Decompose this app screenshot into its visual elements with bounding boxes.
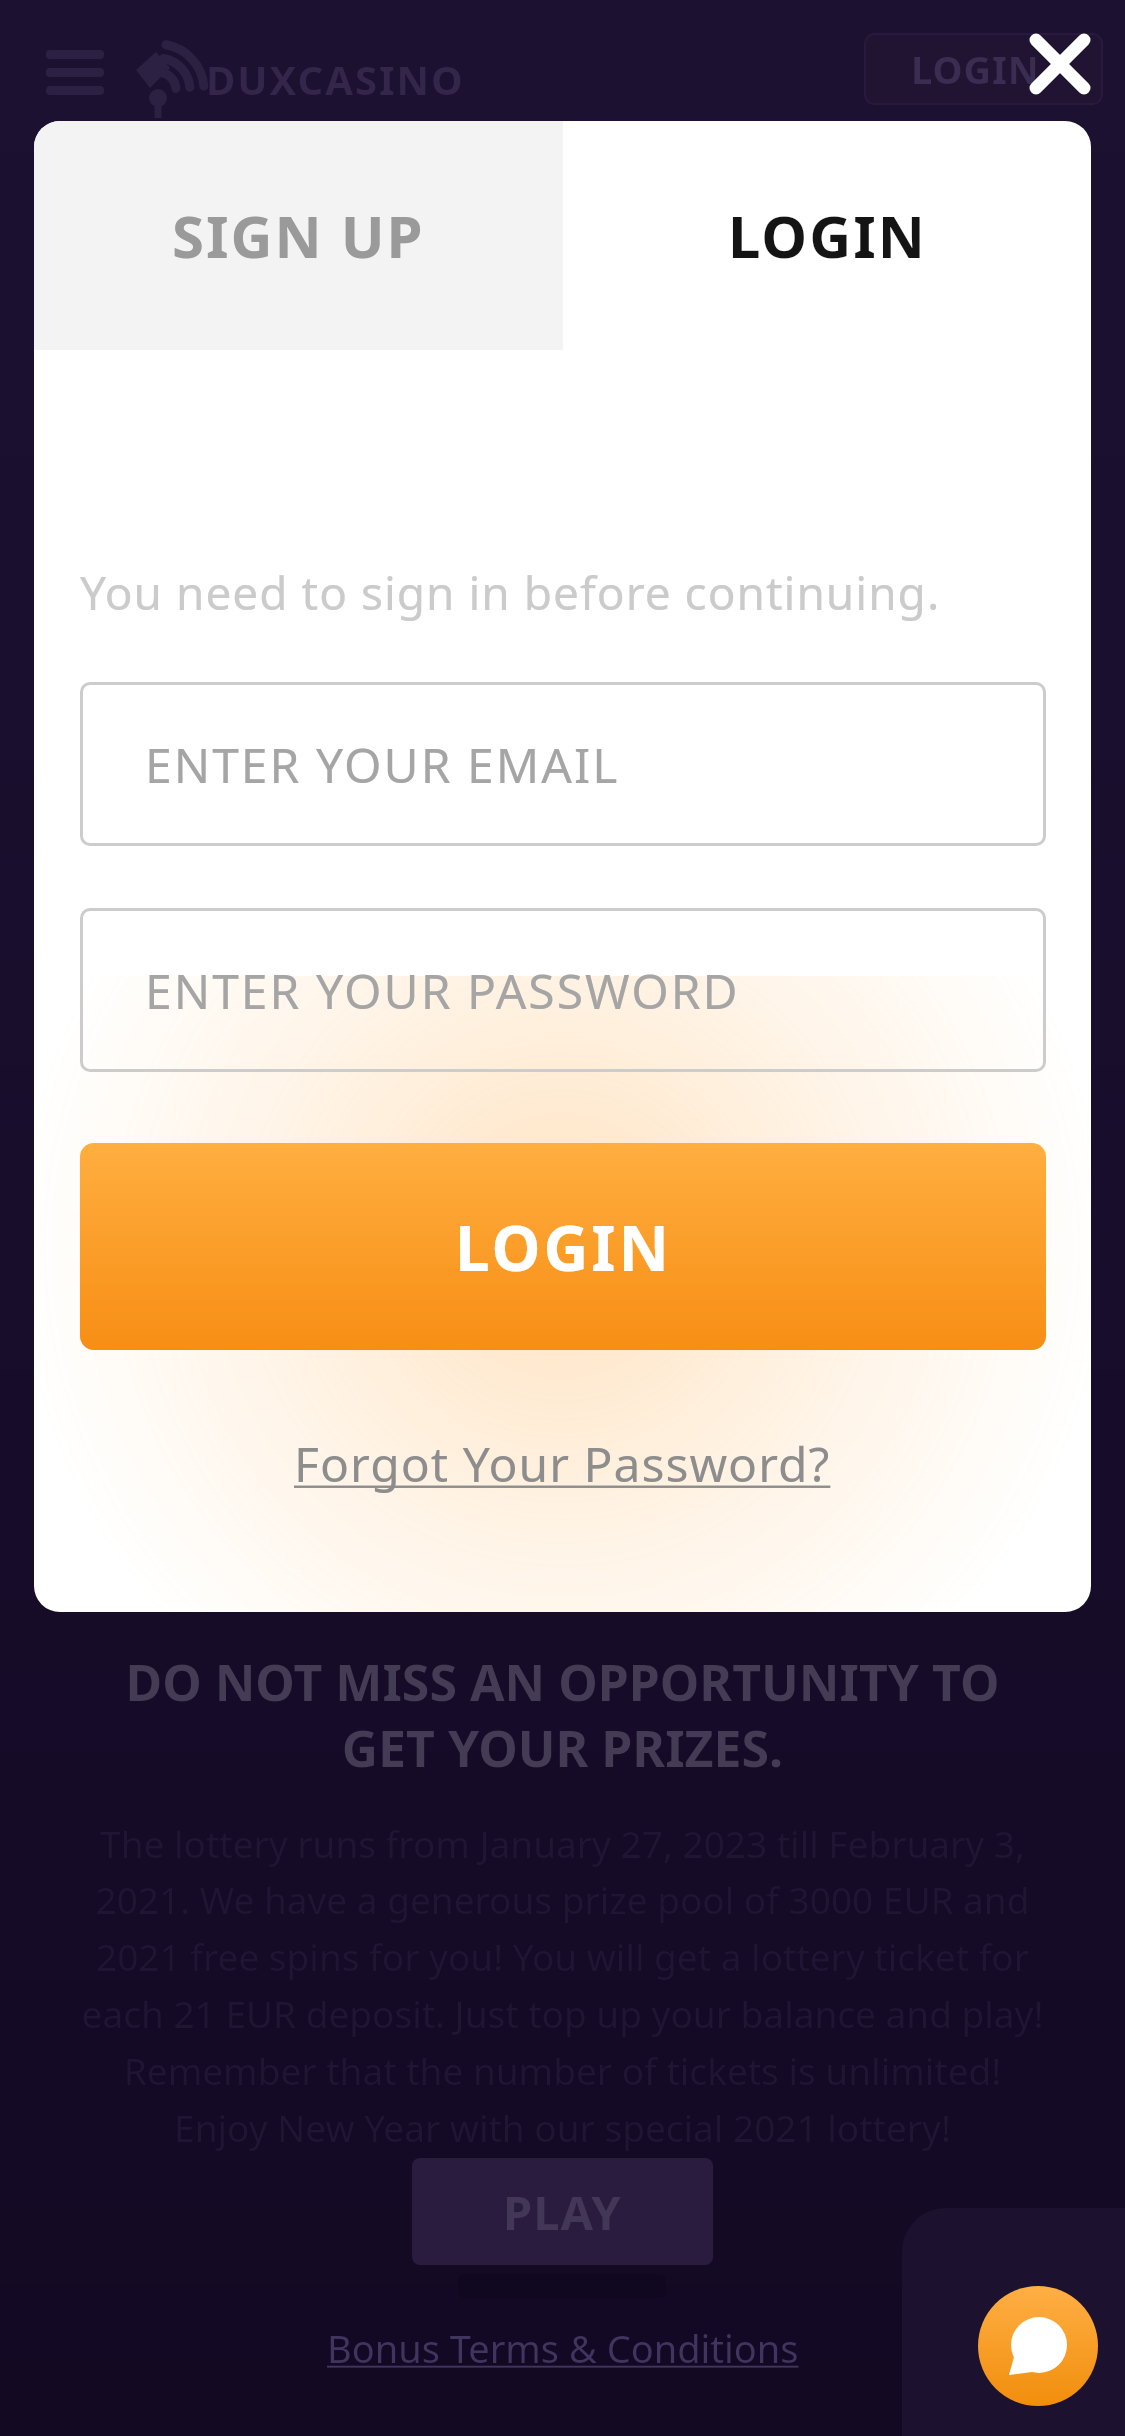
button[interactable]	[978, 2286, 1098, 2406]
button[interactable]: LOGIN	[864, 33, 1103, 105]
staticText: PLAY	[503, 2180, 622, 2244]
staticText: LOGIN	[455, 1205, 672, 1289]
staticText: LOGIN	[911, 43, 1040, 95]
staticText: DUXCASINO	[206, 52, 465, 106]
button[interactable]: LOGIN	[80, 1143, 1046, 1350]
button[interactable]	[1030, 34, 1090, 94]
staticText: GET YOUR PRIZES.	[0, 1714, 1125, 1782]
button[interactable]: SIGN UP	[34, 121, 563, 350]
button[interactable]: Bonus Terms & Conditions	[327, 2322, 799, 2374]
staticText: The lottery runs from January 27, 2023 t…	[0, 1818, 1125, 2153]
button[interactable]	[46, 50, 104, 96]
staticText: ENTER YOUR EMAIL	[145, 732, 620, 797]
button[interactable]: ENTER YOUR PASSWORD	[80, 908, 1046, 1072]
staticText: ENTER YOUR PASSWORD	[145, 958, 740, 1023]
staticText: You need to sign in before continuing.	[80, 561, 941, 624]
button[interactable]: PLAY	[412, 2158, 713, 2265]
staticText: DO NOT MISS AN OPPORTUNITY TO	[0, 1648, 1125, 1716]
staticText: LOGIN	[728, 196, 927, 275]
button[interactable]: ENTER YOUR EMAIL	[80, 682, 1046, 846]
button[interactable]: Forgot Your Password?	[294, 1431, 831, 1496]
staticText: SIGN UP	[172, 196, 425, 275]
button[interactable]: LOGIN	[563, 121, 1091, 350]
